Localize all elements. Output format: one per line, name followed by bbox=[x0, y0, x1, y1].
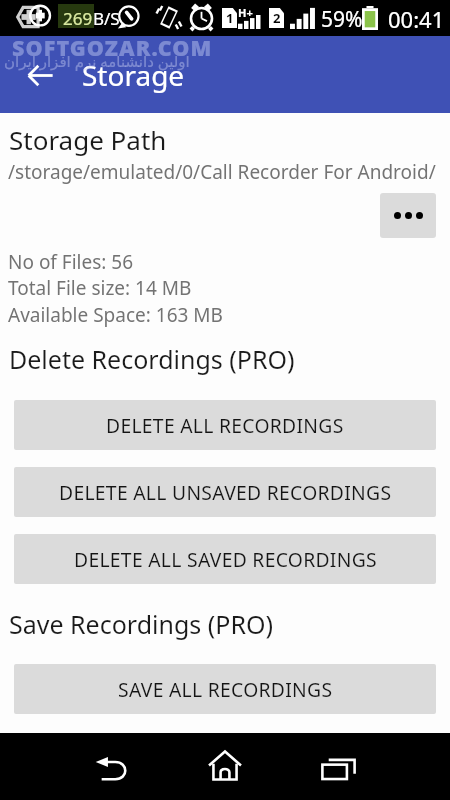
staticText: DELETE ALL SAVED RECORDINGS bbox=[74, 546, 377, 572]
button[interactable]: DELETE ALL SAVED RECORDINGS bbox=[14, 534, 436, 584]
button[interactable]: More options bbox=[380, 193, 436, 238]
staticText: DELETE ALL RECORDINGS bbox=[106, 412, 344, 438]
staticText: 00:41 bbox=[388, 4, 445, 34]
staticText: H+ bbox=[238, 5, 253, 20]
staticText: 2 bbox=[273, 9, 281, 27]
staticText: SOFTGOZAR.COM bbox=[12, 33, 213, 62]
staticText: Available Space: 163 MB bbox=[8, 302, 223, 328]
staticText: /storage/emulated/0/Call Recorder For An… bbox=[8, 159, 436, 185]
staticText: Storage Path bbox=[9, 122, 167, 157]
button[interactable]: SAVE ALL RECORDINGS bbox=[14, 664, 436, 714]
staticText: 1 bbox=[226, 9, 234, 27]
button[interactable]: DELETE ALL RECORDINGS bbox=[14, 400, 436, 450]
staticText: SAVE ALL RECORDINGS bbox=[118, 676, 333, 702]
staticText: 59% bbox=[321, 5, 363, 34]
button[interactable]: Recent apps bbox=[309, 739, 367, 797]
staticText: Storage bbox=[82, 56, 185, 94]
staticText: Total File size: 14 MB bbox=[8, 275, 192, 301]
button[interactable]: Back bbox=[83, 738, 141, 796]
button[interactable]: DELETE ALL UNSAVED RECORDINGS bbox=[14, 467, 436, 517]
staticText: No of Files: 56 bbox=[8, 249, 134, 275]
button[interactable]: Back bbox=[18, 53, 62, 97]
staticText: DELETE ALL UNSAVED RECORDINGS bbox=[59, 479, 392, 505]
staticText: Delete Recordings (PRO) bbox=[9, 342, 295, 376]
staticText: اولین دانشنامه نرم افزار ایران bbox=[4, 51, 190, 71]
button[interactable]: Home bbox=[196, 737, 254, 795]
staticText: 269 bbox=[63, 7, 93, 29]
staticText: B/S bbox=[93, 7, 120, 29]
staticText: Save Recordings (PRO) bbox=[9, 607, 273, 641]
